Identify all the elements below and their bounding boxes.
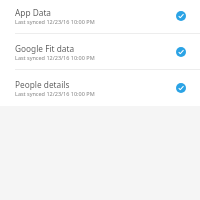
button[interactable]: Google Fit data — [0, 34, 200, 70]
other: Synced — [176, 47, 186, 57]
staticText: Last synced 12/23/16 10:00 PM — [15, 90, 95, 97]
other: Synced — [176, 11, 186, 21]
button[interactable]: People details — [0, 70, 200, 106]
staticText: Google Fit data — [15, 43, 75, 54]
button[interactable]: App Data — [0, 0, 200, 34]
staticText: App Data — [15, 7, 52, 18]
staticText: People details — [15, 79, 70, 90]
other: Synced — [176, 83, 186, 93]
staticText: Last synced 12/23/16 10:00 PM — [15, 54, 95, 61]
staticText: Last synced 12/23/16 10:00 PM — [15, 18, 95, 25]
